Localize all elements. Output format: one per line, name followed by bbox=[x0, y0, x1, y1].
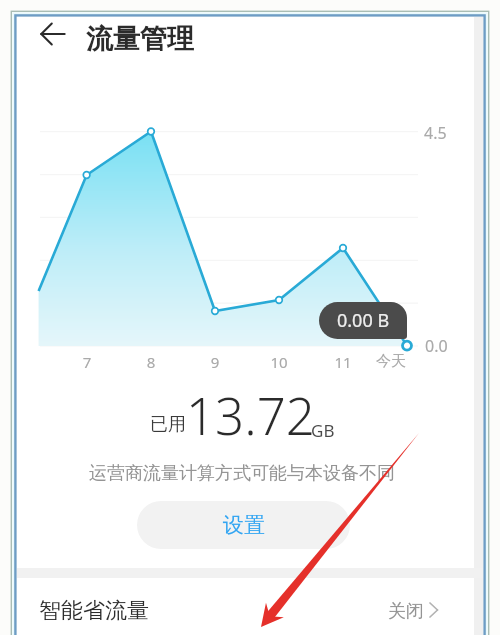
staticText: 13.72 bbox=[186, 380, 315, 449]
staticText: 0.00 B bbox=[337, 308, 390, 333]
staticText: 今天 bbox=[366, 352, 416, 371]
staticText: 智能省流量 bbox=[39, 597, 149, 625]
staticText: 11 bbox=[328, 352, 358, 372]
staticText: 4.5 bbox=[424, 122, 447, 144]
button[interactable]: 设置 bbox=[137, 501, 350, 549]
button[interactable]: 智能省流量 bbox=[17, 578, 483, 635]
button[interactable]: Back bbox=[31, 12, 75, 56]
staticText: 10 bbox=[264, 352, 294, 372]
staticText: 已用 bbox=[150, 413, 186, 436]
staticText: 设置 bbox=[223, 512, 265, 538]
staticText: 0.0 bbox=[425, 335, 448, 357]
staticText: 运营商流量计算方式可能与本设备不同 bbox=[62, 462, 422, 485]
staticText: 流量管理 bbox=[86, 22, 194, 56]
staticText: GB bbox=[311, 419, 335, 442]
staticText: 9 bbox=[200, 352, 230, 372]
staticText: 7 bbox=[72, 352, 102, 372]
staticText: 8 bbox=[136, 352, 166, 372]
staticText: 关闭 bbox=[388, 600, 424, 623]
